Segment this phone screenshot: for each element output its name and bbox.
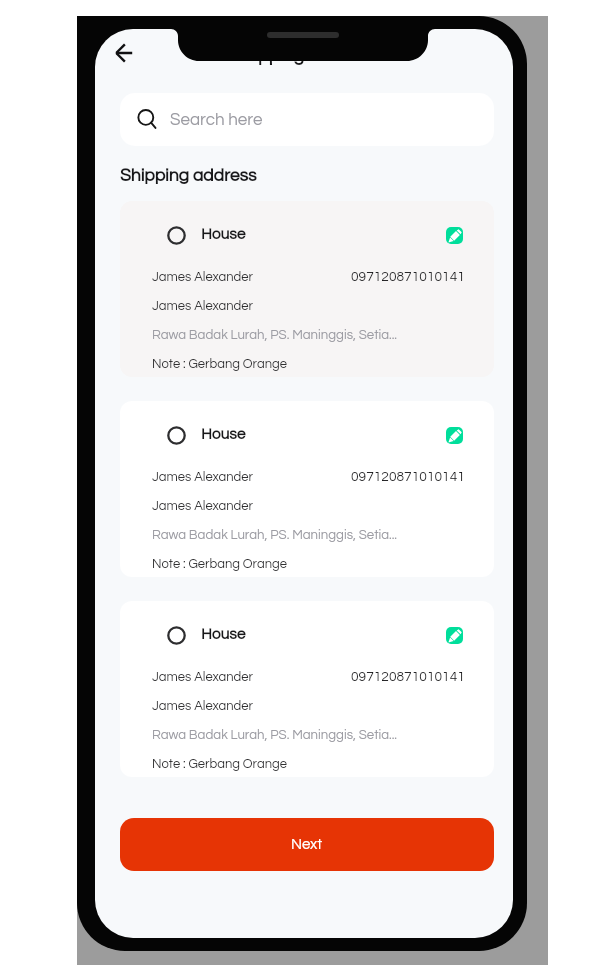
staticText: Note : Gerbang Orange <box>152 557 287 570</box>
staticText: James Alexander <box>152 299 253 312</box>
staticText: 097120871010141 <box>351 470 465 484</box>
button[interactable]: Select House address <box>167 426 186 445</box>
button[interactable]: Back <box>102 31 146 75</box>
staticText: 097120871010141 <box>351 270 465 284</box>
button[interactable]: Search here <box>120 93 494 146</box>
staticText: James Alexander <box>152 470 253 483</box>
button[interactable]: Edit address <box>446 627 463 644</box>
staticText: House <box>201 226 246 242</box>
staticText: 097120871010141 <box>351 670 465 684</box>
staticText: Rawa Badak Lurah, PS. Maninggis, Setia..… <box>152 728 398 742</box>
staticText: Search here <box>170 111 263 129</box>
staticText: Rawa Badak Lurah, PS. Maninggis, Setia..… <box>152 528 398 542</box>
staticText: House <box>201 426 246 442</box>
button[interactable]: Select House address <box>120 201 494 377</box>
staticText: Note : Gerbang Orange <box>152 357 287 370</box>
staticText: Next <box>291 837 323 852</box>
staticText: Rawa Badak Lurah, PS. Maninggis, Setia..… <box>152 328 398 342</box>
staticText: James Alexander <box>152 270 253 283</box>
button[interactable]: Select House address <box>167 626 186 645</box>
button[interactable]: Select House address <box>120 601 494 777</box>
staticText: House <box>201 626 246 642</box>
button[interactable]: Next <box>120 818 494 871</box>
button[interactable]: Edit address <box>446 227 463 244</box>
button[interactable]: Select House address <box>120 401 494 577</box>
staticText: James Alexander <box>152 699 253 712</box>
staticText: James Alexander <box>152 499 253 512</box>
button[interactable]: Edit address <box>446 427 463 444</box>
staticText: James Alexander <box>152 670 253 683</box>
staticText: Shipping address <box>120 167 257 185</box>
button[interactable]: Select House address <box>167 226 186 245</box>
staticText: Note : Gerbang Orange <box>152 757 287 770</box>
staticText: Shipping <box>233 46 304 65</box>
